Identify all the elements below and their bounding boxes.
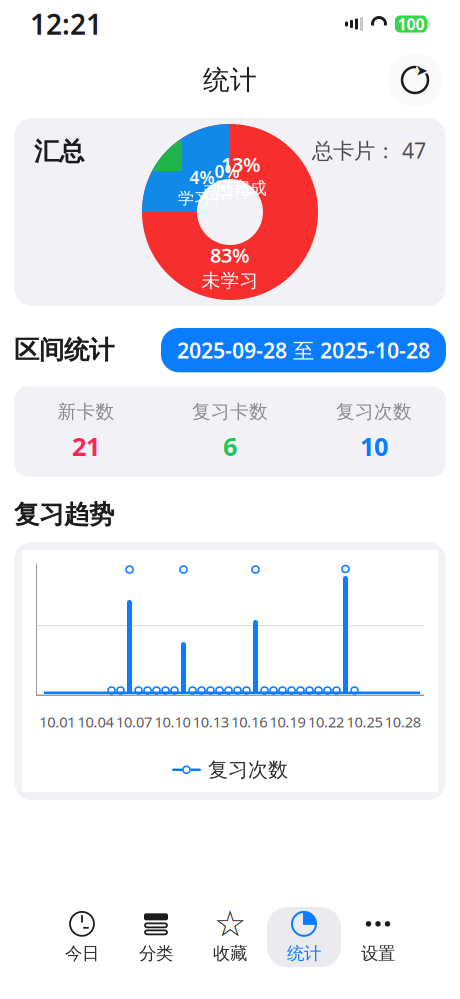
staticText: 10.22 <box>308 712 344 731</box>
staticText: 10.28 <box>385 712 421 731</box>
staticText: 复习次数 <box>336 400 412 423</box>
staticText: 统计 <box>203 64 257 96</box>
staticText: 100 <box>397 13 424 35</box>
staticText: 新卡数 <box>57 400 114 423</box>
staticText: 10.19 <box>270 712 306 731</box>
button[interactable]: 今日 <box>45 907 119 967</box>
staticText: 4% <box>189 166 214 189</box>
staticText: 13% <box>221 151 261 178</box>
staticText: 已完成 <box>215 178 266 199</box>
staticText: 10.10 <box>154 712 190 731</box>
staticText: 2025-09-28 至 2025-10-28 <box>177 336 430 364</box>
staticText: 已暂停 <box>203 183 251 202</box>
staticText: 10.07 <box>116 712 152 731</box>
staticText: 10 <box>360 429 388 463</box>
button[interactable]: ☆ <box>193 907 267 967</box>
staticText: 复习次数 <box>208 757 288 782</box>
button[interactable]: 刷新 <box>388 53 442 107</box>
staticText: 10.16 <box>231 712 267 731</box>
staticText: 10.13 <box>193 712 229 731</box>
staticText: ➤ <box>415 62 427 79</box>
staticText: 复习趋势 <box>14 499 114 530</box>
staticText: 今日 <box>65 943 99 964</box>
staticText: 83% <box>210 242 250 268</box>
staticText: ☆ <box>214 903 246 944</box>
staticText: 区间统计 <box>14 335 114 366</box>
button[interactable]: 2025-09-28 至 2025-10-28 <box>161 328 446 372</box>
staticText: 6 <box>223 429 237 463</box>
staticText: 0% <box>214 160 239 183</box>
staticText: 总卡片： 47 <box>312 136 426 164</box>
button[interactable]: 统计 <box>267 907 341 967</box>
staticText: 设置 <box>361 943 395 964</box>
button[interactable]: 设置 <box>341 907 415 967</box>
staticText: 未学习 <box>201 269 258 292</box>
staticText: 10.04 <box>78 712 114 731</box>
staticText: 10.01 <box>39 712 75 731</box>
staticText: 21 <box>72 429 100 463</box>
staticText: 收藏 <box>213 943 247 964</box>
staticText: 12:21 <box>30 5 102 43</box>
staticText: 分类 <box>139 943 173 964</box>
staticText: 汇总 <box>34 136 84 167</box>
staticText: 复习卡数 <box>192 400 268 423</box>
button[interactable]: 分类 <box>119 907 193 967</box>
staticText: 学习中 <box>178 189 226 208</box>
staticText: 统计 <box>287 943 321 964</box>
staticText: 10.25 <box>346 712 382 731</box>
